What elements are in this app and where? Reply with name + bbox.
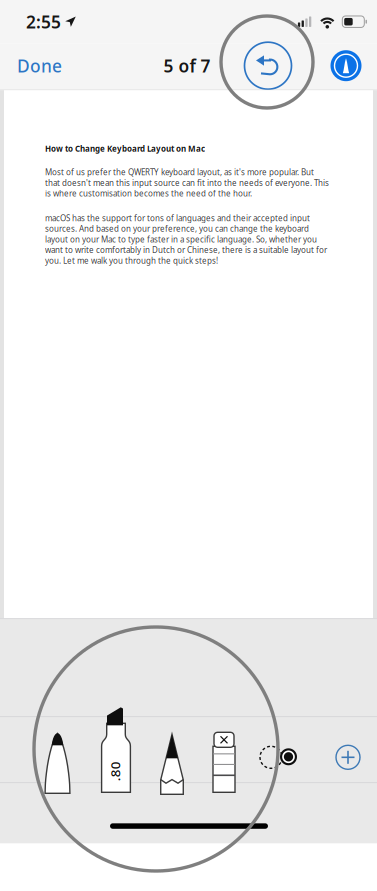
- staticText: macOS has the support for tons of langua…: [45, 213, 327, 266]
- button[interactable]: Undo: [243, 41, 293, 91]
- staticText: How to Change Keyboard Layout on Mac: [45, 143, 205, 154]
- button[interactable]: Highlighter: [101, 707, 131, 792]
- staticText: Done: [17, 54, 62, 77]
- button[interactable]: Colour: [280, 748, 297, 765]
- button[interactable]: Pencil: [160, 734, 184, 794]
- button[interactable]: Pen: [44, 733, 71, 793]
- staticText: .80: [105, 762, 125, 780]
- button[interactable]: Markup: [326, 46, 366, 86]
- button[interactable]: Done: [17, 49, 73, 83]
- button[interactable]: Eraser: [213, 732, 235, 792]
- button[interactable]: Lasso: [260, 746, 282, 768]
- staticText: Most of us prefer the QWERTY keyboard la…: [45, 167, 329, 199]
- button[interactable]: Add: [328, 737, 368, 777]
- staticText: 2:55: [26, 10, 61, 33]
- staticText: 5 of 7: [163, 54, 210, 77]
